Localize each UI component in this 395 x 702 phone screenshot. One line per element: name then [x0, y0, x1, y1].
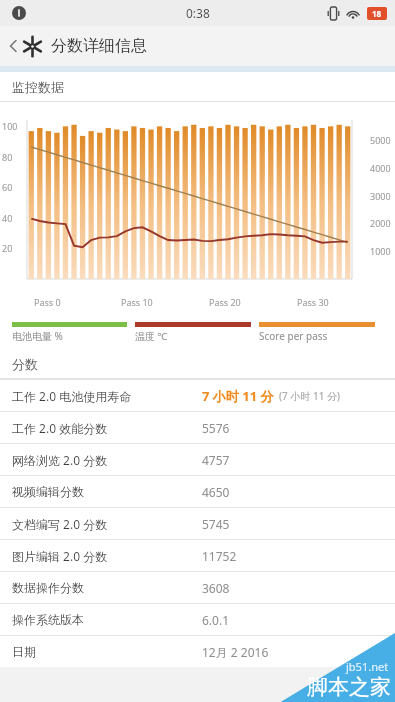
- button[interactable]: 日期: [0, 635, 395, 667]
- button[interactable]: 工作 2.0 电池使用寿命: [0, 379, 395, 411]
- button[interactable]: 网络浏览 2.0 分数: [0, 443, 395, 475]
- button[interactable]: 数据操作分数: [0, 571, 395, 603]
- staticText: 4757: [202, 452, 230, 468]
- staticText: 100: [2, 120, 18, 132]
- other: Back: [8, 38, 18, 54]
- staticText: 11752: [202, 548, 237, 564]
- button[interactable]: Back: [0, 26, 395, 66]
- staticText: 0:38: [186, 5, 210, 21]
- staticText: 温度 ℃: [135, 329, 168, 343]
- other: Vibrate: [328, 7, 339, 20]
- staticText: 文档编写 2.0 分数: [12, 516, 202, 532]
- staticText: 18: [372, 8, 382, 19]
- staticText: 4650: [202, 484, 230, 500]
- staticText: Score per pass: [259, 329, 328, 343]
- staticText: 网络浏览 2.0 分数: [12, 452, 202, 468]
- staticText: 分数: [12, 356, 38, 372]
- staticText: 6.0.1: [202, 612, 230, 628]
- button[interactable]: 工作 2.0 效能分数: [0, 411, 395, 443]
- staticText: 5745: [202, 516, 230, 532]
- staticText: 60: [2, 181, 13, 193]
- staticText: (7 小时 11 分): [279, 389, 340, 403]
- staticText: 5576: [202, 420, 230, 436]
- staticText: 1000: [370, 245, 391, 257]
- staticText: 工作 2.0 效能分数: [12, 420, 202, 436]
- staticText: 工作 2.0 电池使用寿命: [12, 388, 202, 404]
- staticText: Pass 20: [209, 296, 241, 308]
- staticText: 40: [2, 212, 13, 224]
- staticText: 日期: [12, 644, 202, 659]
- staticText: 图片编辑 2.0 分数: [12, 548, 202, 564]
- staticText: 80: [2, 151, 13, 163]
- staticText: Pass 0: [34, 296, 61, 308]
- staticText: Pass 30: [297, 296, 329, 308]
- staticText: 分数详细信息: [51, 36, 147, 56]
- button[interactable]: 文档编写 2.0 分数: [0, 507, 395, 539]
- staticText: 7 小时 11 分: [202, 387, 274, 405]
- staticText: jb51.net: [346, 659, 389, 674]
- other: Wi-Fi: [346, 8, 360, 19]
- button[interactable]: 图片编辑 2.0 分数: [0, 539, 395, 571]
- staticText: 监控数据: [12, 79, 64, 95]
- staticText: Pass 10: [121, 296, 153, 308]
- staticText: 视频编辑分数: [12, 484, 202, 499]
- button[interactable]: 操作系统版本: [0, 603, 395, 635]
- staticText: 12月 2 2016: [202, 644, 269, 660]
- staticText: 4000: [370, 162, 391, 174]
- staticText: 2000: [370, 217, 391, 229]
- staticText: 电池电量 %: [12, 329, 63, 343]
- staticText: 3608: [202, 580, 230, 596]
- staticText: 脚本之家: [307, 674, 391, 700]
- staticText: 20: [2, 242, 13, 254]
- staticText: 5000: [370, 134, 391, 146]
- staticText: 3000: [370, 190, 391, 202]
- staticText: 数据操作分数: [12, 580, 202, 595]
- staticText: 操作系统版本: [12, 612, 202, 627]
- button[interactable]: 视频编辑分数: [0, 475, 395, 507]
